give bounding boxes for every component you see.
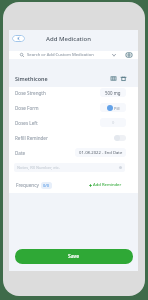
button[interactable]: Add Reminder (89, 182, 122, 188)
staticText: Save (68, 253, 80, 260)
staticText: Dose Strength (15, 90, 46, 96)
button[interactable]: Scan with camera (124, 50, 134, 60)
staticText: Refill Reminder (15, 135, 48, 141)
staticText: Date (15, 150, 26, 156)
staticText: Add Reminder (93, 182, 122, 188)
staticText: Add Medication (46, 35, 91, 43)
staticText: Search or Add Custom Medication (27, 52, 94, 58)
button[interactable]: Notes, RX Number, etc. (14, 163, 125, 172)
staticText: Notes, RX Number, etc. (17, 165, 60, 170)
staticText: Pill (114, 106, 120, 111)
button[interactable]: Dose Form (9, 100, 138, 115)
staticText: 0/0 (43, 183, 50, 188)
button[interactable]: Expand (110, 51, 118, 59)
button[interactable]: Dose Strength (9, 85, 138, 100)
button[interactable]: Refill reminder toggle (114, 135, 126, 141)
button[interactable]: Back (12, 35, 25, 42)
staticText: Doses Left (15, 120, 38, 126)
button[interactable]: Doses Left (9, 115, 138, 130)
button[interactable]: Scan barcode (110, 75, 117, 82)
staticText: Dose Form (15, 105, 39, 111)
staticText: 01-08-2022 - End Date (79, 150, 123, 156)
staticText: Frequency (16, 182, 39, 188)
button[interactable]: Refill Reminder (9, 130, 138, 145)
staticText: 0 (112, 120, 115, 125)
button[interactable]: Search or Add Custom Medication (9, 51, 138, 59)
staticText: 500 mg (105, 90, 121, 96)
button[interactable]: Date (9, 145, 138, 160)
staticText: Simethicone (15, 75, 48, 82)
button[interactable]: Save (15, 249, 133, 264)
button[interactable]: Delete (120, 75, 127, 82)
